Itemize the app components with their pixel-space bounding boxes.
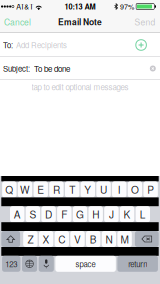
staticText: Subject: [3, 63, 30, 74]
staticText: A [14, 207, 21, 221]
button[interactable]: I [112, 181, 126, 197]
staticText: N [105, 232, 112, 246]
button[interactable]: Cancel [0, 13, 37, 33]
button[interactable]: A [10, 206, 24, 222]
staticText: J [109, 207, 114, 221]
staticText: W [20, 182, 30, 197]
button[interactable]: Q [2, 181, 16, 197]
staticText: 97% [120, 1, 134, 12]
staticText: Cancel [4, 16, 31, 28]
button[interactable]: W [18, 181, 32, 197]
button[interactable]: 123 [2, 256, 20, 272]
button[interactable]: J [104, 206, 119, 222]
staticText: AT&T [16, 1, 33, 12]
staticText: E [37, 182, 44, 197]
button[interactable]: M [117, 231, 132, 247]
button[interactable]: D [41, 206, 56, 222]
button[interactable]: N [102, 231, 116, 247]
staticText: G [76, 207, 84, 221]
staticText: B [90, 232, 97, 246]
button[interactable]: Y [81, 181, 95, 197]
staticText: To: [3, 39, 13, 51]
button[interactable]: T [65, 181, 79, 197]
staticText: H [92, 207, 99, 221]
staticText: 123 [5, 258, 17, 269]
button[interactable]: return [117, 256, 158, 272]
staticText: return [128, 258, 147, 269]
button[interactable]: Subject: [0, 57, 160, 80]
staticText: Z [27, 232, 33, 246]
button[interactable]: Dictate [39, 256, 54, 272]
staticText: Add Recipients [16, 39, 67, 51]
button[interactable]: F [57, 206, 71, 222]
staticText: M [121, 232, 129, 246]
staticText: U [100, 182, 107, 197]
staticText: Q [5, 182, 13, 197]
staticText: T [69, 182, 75, 197]
button[interactable]: Shift [1, 231, 20, 247]
staticText: O [131, 182, 139, 197]
button[interactable]: tap to edit optional messages [0, 80, 160, 176]
staticText: F [61, 207, 67, 221]
staticText: L [140, 207, 146, 221]
staticText: R [53, 182, 60, 197]
staticText: K [124, 207, 131, 221]
button[interactable]: space [55, 256, 116, 272]
button[interactable]: X [39, 231, 53, 247]
button[interactable]: S [26, 206, 40, 222]
button[interactable]: G [73, 206, 87, 222]
staticText: P [147, 182, 154, 197]
button[interactable]: To: [0, 33, 160, 57]
button[interactable]: U [96, 181, 111, 197]
button[interactable]: Z [23, 231, 38, 247]
button[interactable]: O [128, 181, 142, 197]
staticText: S [29, 207, 36, 221]
staticText: To be done [34, 63, 70, 74]
staticText: V [74, 232, 81, 246]
button[interactable]: Send [129, 13, 160, 33]
button[interactable]: B [86, 231, 100, 247]
button[interactable]: P [143, 181, 158, 197]
staticText: tap to edit optional messages [31, 81, 128, 92]
button[interactable]: E [33, 181, 48, 197]
button[interactable]: V [70, 231, 85, 247]
staticText: Email Note [58, 16, 102, 28]
button[interactable]: C [55, 231, 69, 247]
button[interactable]: K [120, 206, 134, 222]
staticText: Send [135, 16, 156, 28]
staticText: C [58, 232, 65, 246]
button[interactable]: R [49, 181, 64, 197]
staticText: I [118, 182, 121, 197]
staticText: 10:13 AM [64, 1, 95, 12]
staticText: Y [84, 182, 91, 197]
staticText: D [45, 207, 52, 221]
button[interactable]: H [88, 206, 103, 222]
staticText: X [43, 232, 50, 246]
button[interactable]: Delete [135, 231, 159, 247]
button[interactable]: Next keyboard [22, 256, 37, 272]
staticText: space [76, 258, 96, 269]
button[interactable]: L [136, 206, 150, 222]
